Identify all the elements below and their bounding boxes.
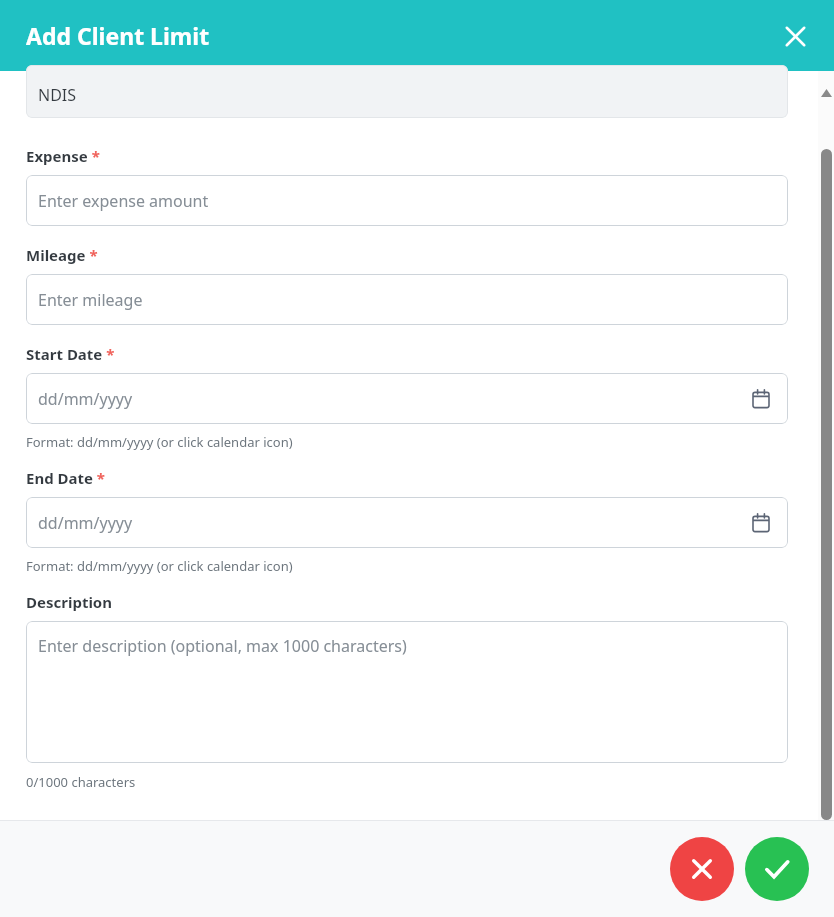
button[interactable]: Cancel [670, 837, 734, 901]
button[interactable]: Open calendar [750, 512, 772, 534]
staticText: Add Client Limit [26, 20, 210, 51]
staticText: Enter expense amount [38, 190, 209, 212]
staticText: Description [26, 592, 112, 612]
button[interactable]: dd/mm/yyyy [26, 497, 788, 548]
button[interactable]: Enter description (optional, max 1000 ch… [26, 621, 788, 763]
staticText: Start Date * [26, 344, 115, 364]
button[interactable]: Enter mileage [26, 274, 788, 325]
staticText: Expense * [26, 146, 100, 166]
staticText: Enter mileage [38, 289, 143, 311]
staticText: Enter description (optional, max 1000 ch… [38, 635, 407, 657]
button[interactable]: Open calendar [750, 388, 772, 410]
button[interactable]: Close [778, 19, 812, 53]
button[interactable]: dd/mm/yyyy [26, 373, 788, 424]
staticText: End Date * [26, 468, 105, 488]
button[interactable]: Enter expense amount [26, 175, 788, 226]
button[interactable]: NDIS [26, 65, 788, 118]
staticText: 0/1000 characters [26, 773, 136, 791]
staticText: dd/mm/yyyy [38, 388, 133, 410]
staticText: Format: dd/mm/yyyy (or click calendar ic… [26, 433, 293, 451]
staticText: Mileage * [26, 245, 98, 265]
button[interactable]: Save [745, 837, 809, 901]
staticText: NDIS [38, 84, 77, 106]
staticText: Format: dd/mm/yyyy (or click calendar ic… [26, 557, 293, 575]
staticText: dd/mm/yyyy [38, 512, 133, 534]
